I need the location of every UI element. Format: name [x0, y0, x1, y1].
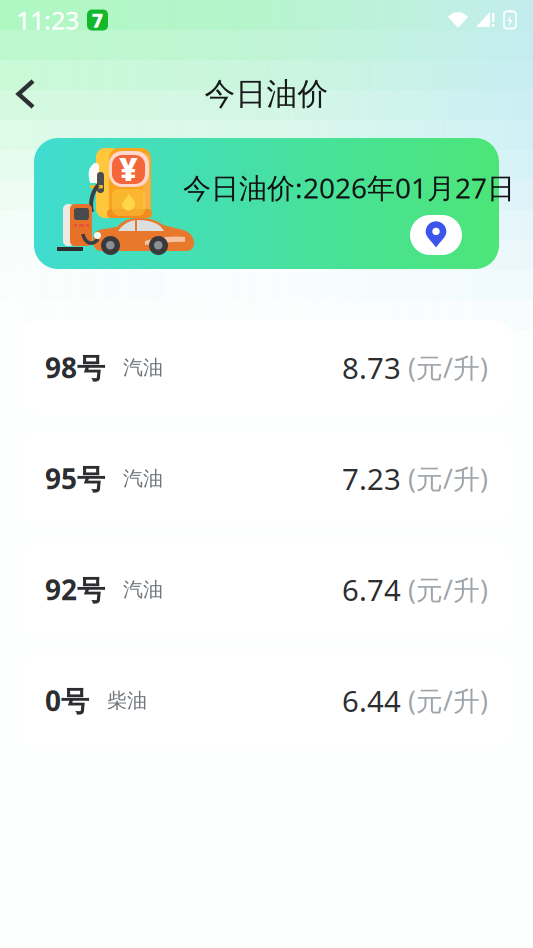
staticText: 汽油 [105, 577, 163, 602]
staticText: 8.73 [342, 348, 401, 387]
staticText: (元/升) [401, 350, 488, 385]
button[interactable]: 95号 [22, 431, 511, 526]
staticText: (元/升) [401, 572, 488, 607]
button[interactable]: Back [0, 67, 48, 121]
button[interactable]: 92号 [22, 542, 511, 637]
staticText: 7.23 [342, 459, 401, 498]
button[interactable]: 98号 [22, 320, 511, 415]
staticText: 98号 [45, 349, 105, 386]
staticText: (元/升) [401, 683, 488, 718]
button[interactable]: 0号 [22, 653, 511, 748]
staticText: (元/升) [401, 461, 488, 496]
staticText: 汽油 [105, 466, 163, 491]
staticText: 6.74 [342, 570, 401, 609]
staticText: 汽油 [105, 355, 163, 380]
staticText: 0号 [45, 682, 89, 719]
staticText: 7 [91, 7, 103, 33]
staticText: 今日油价 [204, 75, 328, 113]
staticText: 柴油 [89, 688, 147, 713]
staticText: 95号 [45, 460, 105, 497]
staticText: ¥ [119, 147, 138, 190]
button[interactable]: Nearby stations [410, 215, 462, 255]
staticText: 92号 [45, 571, 105, 608]
staticText: 6.44 [342, 681, 401, 720]
staticText: 11:23 [16, 3, 79, 37]
staticText: 今日油价:2026年01月27日 [183, 169, 515, 206]
